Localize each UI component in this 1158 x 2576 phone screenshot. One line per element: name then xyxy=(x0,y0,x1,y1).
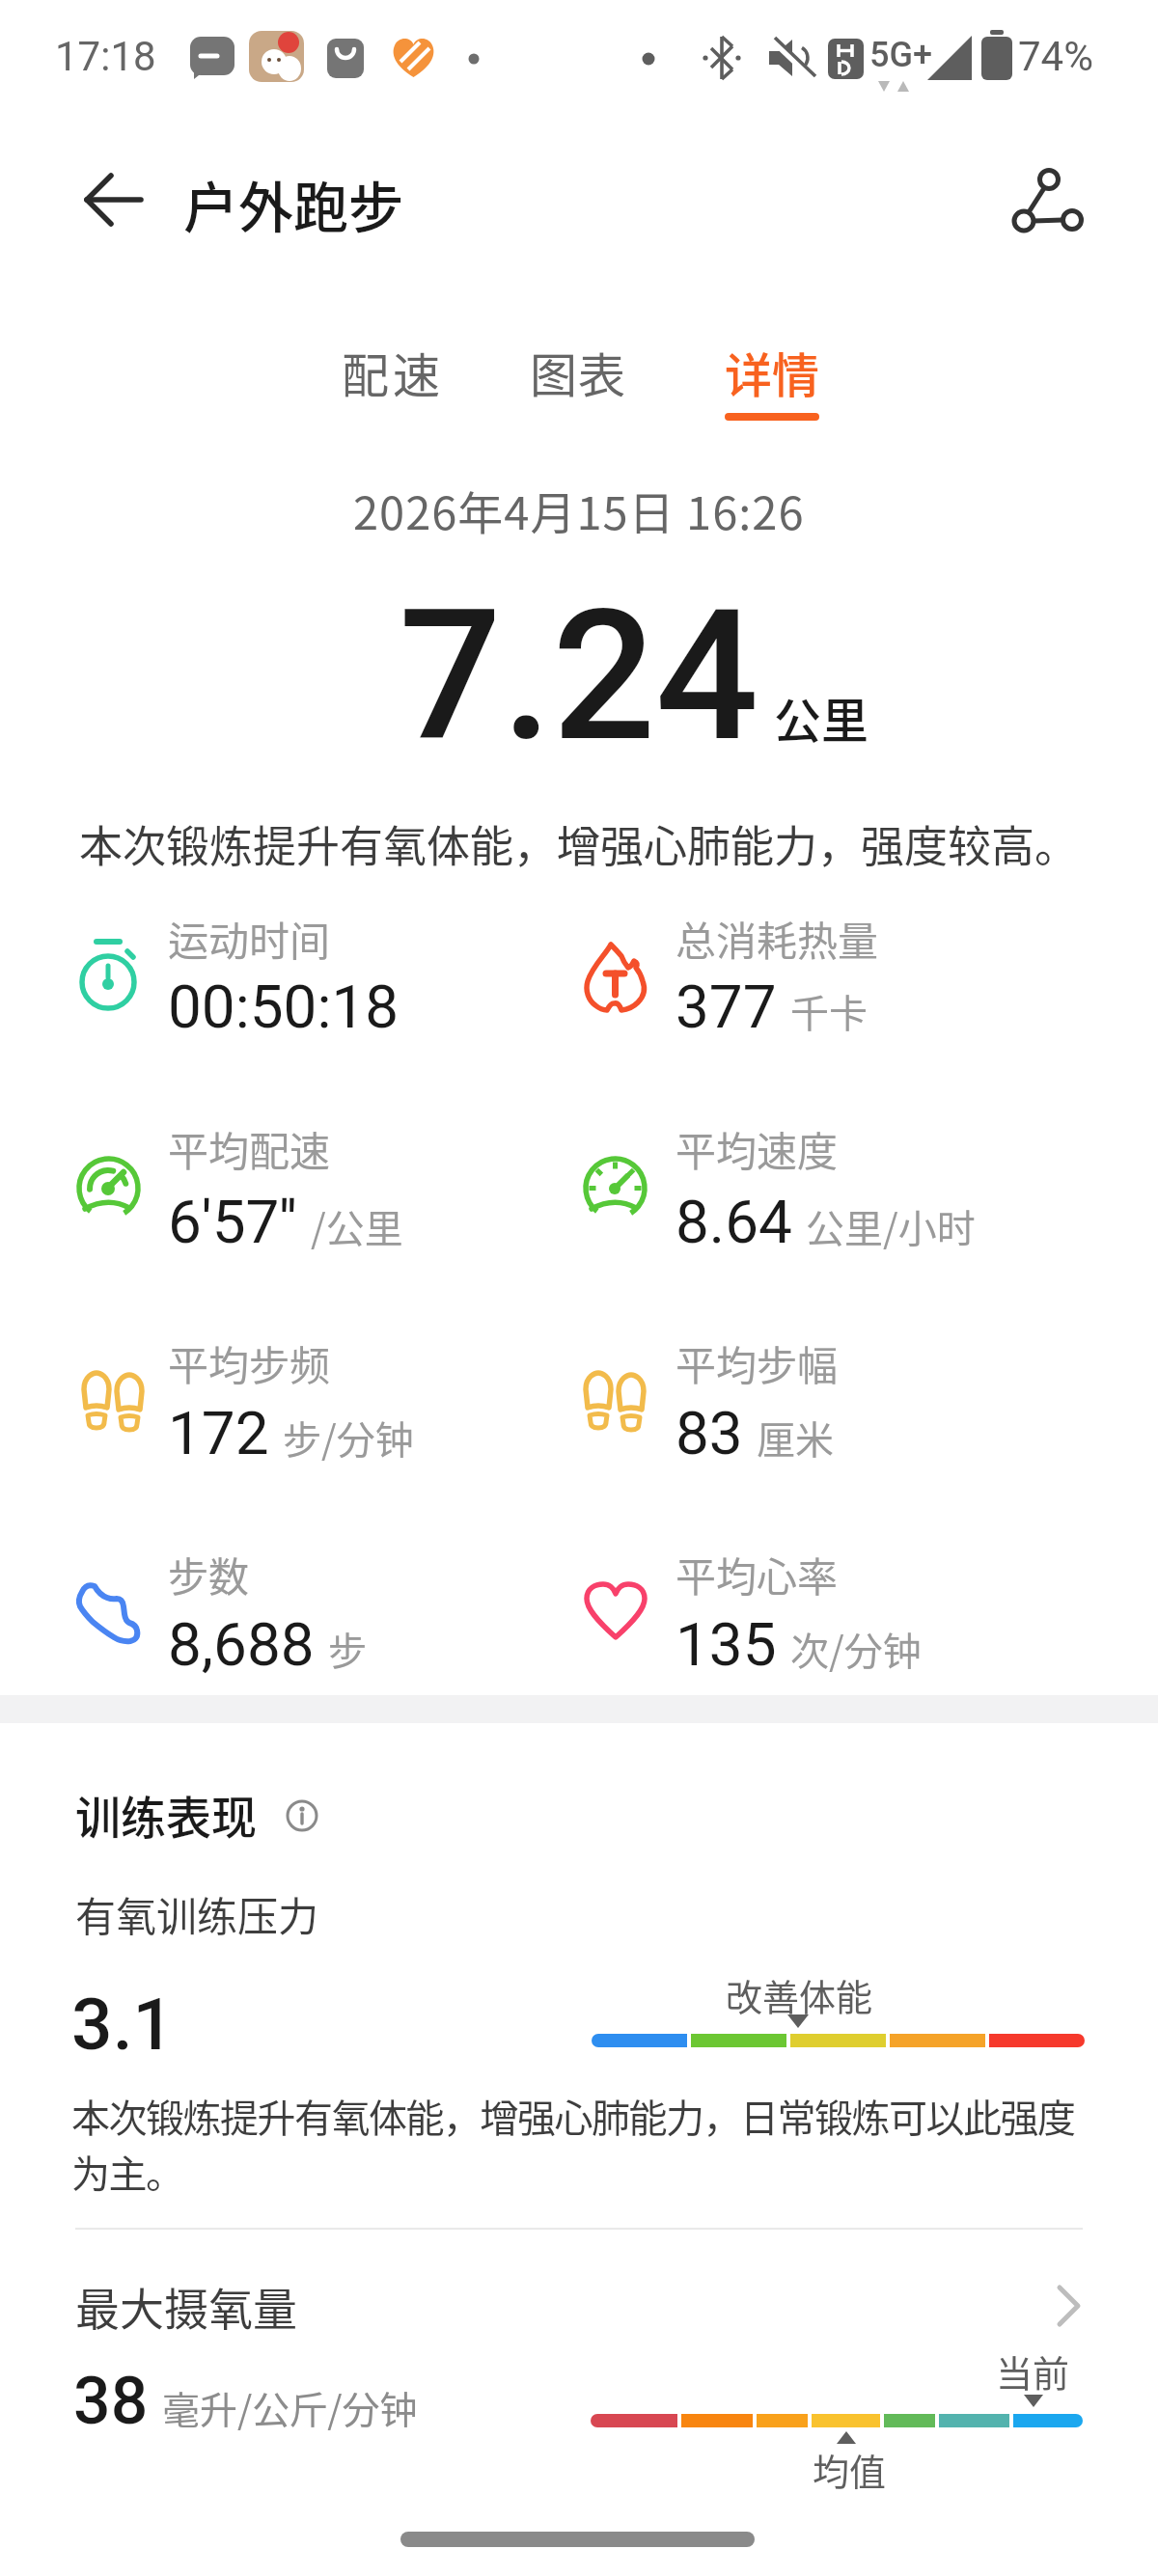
staticText: 83 xyxy=(675,1398,743,1468)
staticText: 74% xyxy=(1018,33,1093,80)
staticText: 平均速度 xyxy=(675,1119,839,1178)
staticText: 千卡 xyxy=(790,983,868,1039)
staticText: 2026年4月15日 16:26 xyxy=(353,477,805,542)
staticText: /公里 xyxy=(311,1198,403,1254)
button[interactable] xyxy=(989,150,1095,250)
staticText: 毫升/公斤/分钟 xyxy=(162,2380,418,2434)
staticText: 详情 xyxy=(725,338,820,406)
staticText: 步 xyxy=(328,1621,367,1677)
button[interactable] xyxy=(64,159,160,242)
staticText: 平均心率 xyxy=(675,1545,839,1603)
staticText: 17:18 xyxy=(55,33,156,80)
staticText: 图表 xyxy=(530,338,627,406)
staticText: 当前 xyxy=(996,2344,1070,2398)
staticText: 135 xyxy=(675,1609,777,1680)
staticText: 8,688 xyxy=(168,1609,315,1680)
staticText: 本次锻炼提升有氧体能，增强心肺能力，强度较高。 xyxy=(79,812,1079,875)
staticText: 本次锻炼提升有氧体能，增强心肺能力，日常锻炼可以此强度 为主。 xyxy=(71,2088,1075,2200)
staticText: 均值 xyxy=(813,2443,887,2496)
staticText: 配速 xyxy=(342,338,445,406)
staticText: 厘米 xyxy=(757,1410,834,1466)
staticText: 平均配速 xyxy=(168,1119,331,1178)
button[interactable]: 最大摄氧量 xyxy=(58,2258,1100,2344)
staticText: 训练表现 xyxy=(75,1781,257,1847)
staticText: 公里 xyxy=(774,683,869,752)
staticText: 改善体能 xyxy=(726,1968,873,2021)
staticText: 公里/小时 xyxy=(806,1198,976,1254)
staticText: 步数 xyxy=(168,1545,250,1603)
staticText: 8.64 xyxy=(675,1187,792,1257)
staticText: 7.24 xyxy=(399,570,759,782)
staticText: 最大摄氧量 xyxy=(75,2274,297,2339)
staticText: 户外跑步 xyxy=(183,164,403,244)
button[interactable]: 图表 xyxy=(517,328,652,415)
staticText: 00:50:18 xyxy=(168,972,400,1042)
staticText: 5G+ xyxy=(869,35,933,75)
staticText: 运动时间 xyxy=(168,909,331,968)
staticText: 38 xyxy=(73,2363,149,2440)
staticText: 次/分钟 xyxy=(790,1621,922,1677)
staticText: 有氧训练压力 xyxy=(75,1884,319,1943)
staticText: 172 xyxy=(168,1398,269,1468)
staticText: 平均步频 xyxy=(168,1333,331,1392)
button[interactable]: 配速 xyxy=(324,328,459,415)
staticText: 步/分钟 xyxy=(283,1410,414,1466)
staticText: 平均步幅 xyxy=(675,1333,839,1392)
staticText: 总消耗热量 xyxy=(675,909,879,968)
staticText: 6'57'' xyxy=(168,1187,297,1257)
button[interactable]: 详情 xyxy=(709,328,844,432)
staticText: 377 xyxy=(675,972,777,1042)
staticText: 3.1 xyxy=(71,1982,175,2067)
